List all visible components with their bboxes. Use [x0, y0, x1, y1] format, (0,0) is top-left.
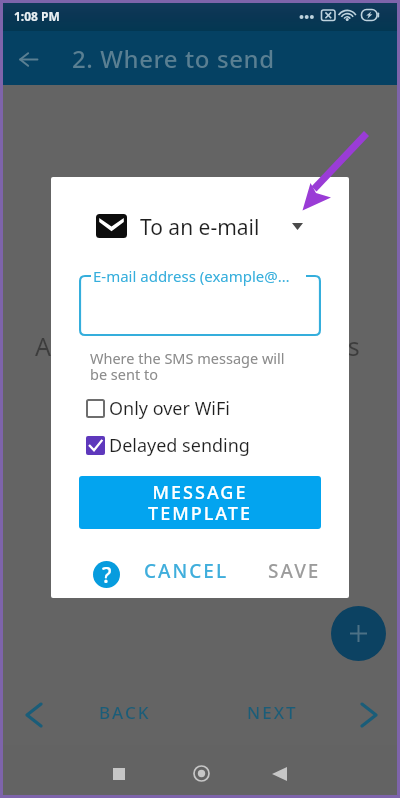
button[interactable]: Add [331, 606, 386, 661]
staticText: ? [102, 561, 112, 588]
staticText: To an e-mail [140, 213, 260, 242]
button[interactable]: NEXT [217, 683, 327, 741]
button[interactable]: Help [93, 561, 120, 588]
button[interactable]: Back [14, 45, 42, 73]
button[interactable]: Home [176, 757, 224, 790]
button[interactable]: Recents [94, 757, 142, 790]
button[interactable]: BACK [70, 683, 180, 741]
button[interactable]: Back [255, 757, 303, 790]
staticText: Only over WiFi [109, 396, 230, 421]
button[interactable]: Previous step [14, 701, 54, 729]
staticText: Where the SMS message will be sent to [90, 348, 285, 385]
staticText: 1:08 PM [14, 8, 60, 24]
button[interactable]: Only over WiFi [51, 393, 349, 423]
staticText: BACK [99, 701, 151, 724]
button[interactable]: Next step [349, 701, 389, 729]
staticText: Add recipients [35, 329, 203, 363]
button[interactable]: MESSAGE TEMPLATE [79, 476, 321, 529]
button[interactable]: To an e-mail [51, 191, 349, 237]
staticText: E-mail address (example@… [93, 266, 290, 286]
button[interactable]: CANCEL [136, 552, 237, 590]
staticText: NEXT [247, 701, 298, 724]
staticText: recipients [245, 329, 360, 363]
staticText: CANCEL [144, 558, 229, 584]
staticText: SAVE [268, 558, 321, 584]
button[interactable]: SAVE [260, 552, 329, 590]
button[interactable]: Delayed sending [51, 430, 349, 460]
staticText: Delayed sending [109, 433, 250, 458]
staticText: MESSAGE TEMPLATE [148, 480, 252, 525]
staticText: 2. Where to send [72, 42, 275, 75]
